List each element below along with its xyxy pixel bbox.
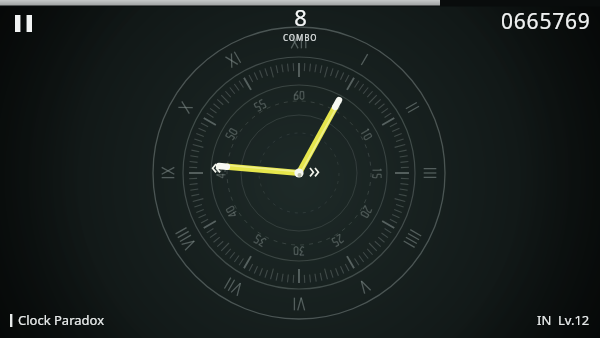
- staticText: Clock Paradox: [18, 311, 105, 329]
- button[interactable]: Pause: [5, 9, 41, 37]
- staticText: COMBO: [283, 32, 318, 43]
- staticText: 8: [294, 2, 307, 32]
- staticText: 0665769: [501, 7, 591, 36]
- button[interactable]: Clock Paradox: [10, 311, 105, 329]
- staticText: IN Lv.12: [537, 311, 590, 329]
